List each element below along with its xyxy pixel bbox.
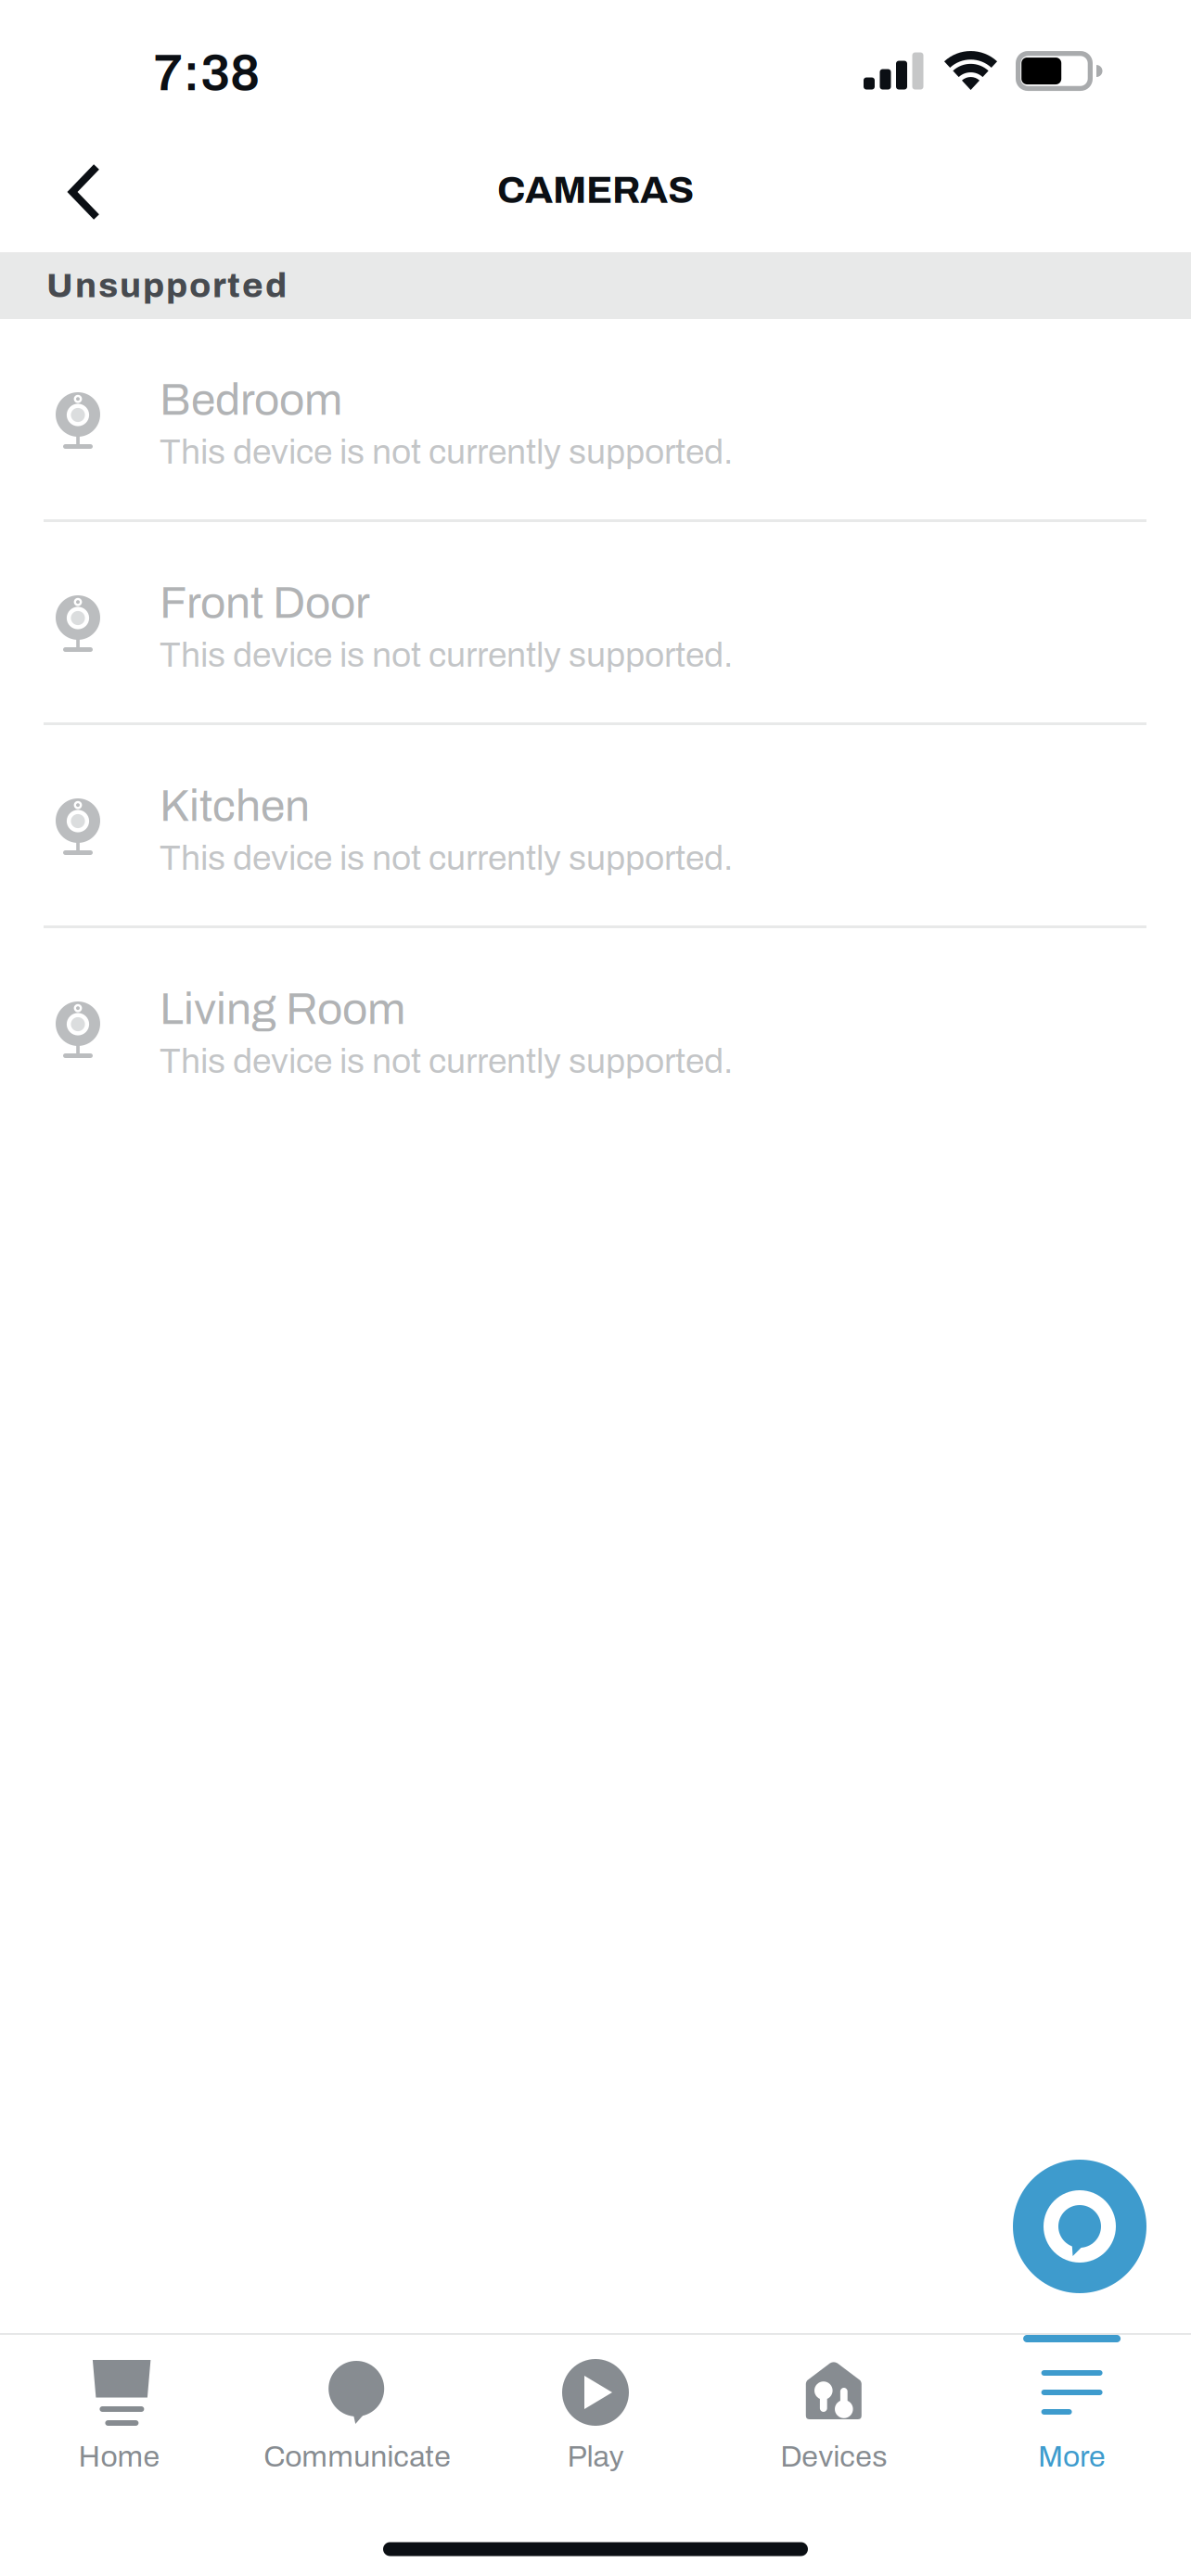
staticText: This device is not currently supported. [160, 839, 733, 877]
staticText: This device is not currently supported. [160, 636, 733, 674]
staticText: Bedroom [160, 376, 342, 424]
button[interactable]: Alexa [1013, 2160, 1146, 2293]
staticText: This device is not currently supported. [160, 433, 733, 471]
button[interactable]: Home [0, 2335, 238, 2522]
button[interactable]: Communicate [238, 2335, 476, 2522]
staticText: U n s u p p o r t e d [46, 267, 287, 304]
staticText: Kitchen [160, 782, 310, 830]
staticText: More [1038, 2441, 1106, 2473]
staticText: Front Door [160, 579, 370, 627]
button[interactable]: More [953, 2335, 1191, 2522]
button[interactable]: Bedroom [0, 319, 1191, 519]
button[interactable]: Devices [715, 2335, 953, 2522]
staticText: CAMERAS [497, 169, 694, 211]
button[interactable]: Front Door [0, 522, 1191, 722]
button[interactable]: Back [0, 128, 144, 252]
staticText: 7:38 [153, 45, 260, 101]
staticText: Communicate [264, 2441, 451, 2473]
staticText: Living Room [160, 985, 405, 1033]
staticText: This device is not currently supported. [160, 1042, 733, 1080]
staticText: Devices [780, 2441, 887, 2473]
button[interactable]: Kitchen [0, 725, 1191, 925]
staticText: Home [78, 2441, 160, 2473]
button[interactable]: Living Room [0, 928, 1191, 1129]
staticText: Play [567, 2441, 624, 2473]
button[interactable]: Play [476, 2335, 715, 2522]
